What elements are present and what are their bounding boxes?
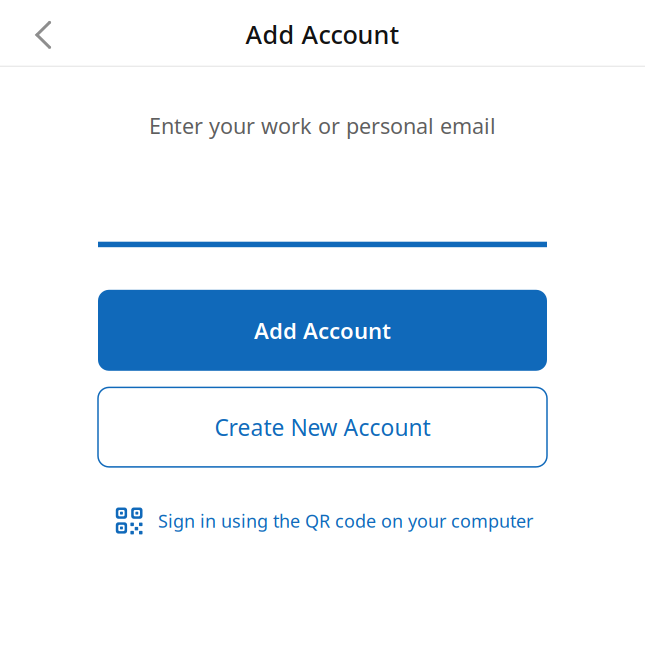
staticText: Sign in using the QR code on your comput…: [158, 508, 533, 533]
button[interactable]: Add Account: [98, 290, 547, 371]
button[interactable]: Create New Account: [98, 387, 547, 467]
staticText: Add Account: [245, 17, 399, 51]
staticText: Enter your work or personal email: [149, 111, 496, 140]
button[interactable]: Back: [11, 3, 76, 68]
button[interactable]: Sign in using the QR code on your comput…: [116, 499, 533, 542]
staticText: Add Account: [254, 315, 391, 345]
staticText: Create New Account: [214, 412, 430, 443]
